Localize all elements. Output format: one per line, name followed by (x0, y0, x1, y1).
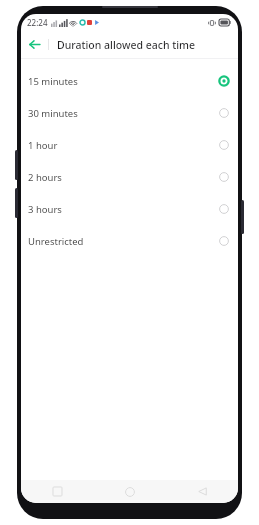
staticText: 15 minutes (28, 75, 78, 88)
staticText: 22:24 (27, 17, 48, 28)
button[interactable]: 2 hours (21, 161, 238, 193)
button[interactable]: Back (166, 480, 238, 503)
button[interactable]: 15 minutes (21, 65, 238, 97)
staticText: 1 hour (28, 139, 58, 152)
button[interactable]: 30 minutes (21, 97, 238, 129)
staticText: 30 minutes (28, 107, 78, 120)
staticText: Unrestricted (28, 235, 84, 248)
button[interactable]: 3 hours (21, 193, 238, 225)
button[interactable]: Unrestricted (21, 225, 238, 257)
staticText: 2 hours (28, 171, 62, 184)
staticText: 3 hours (28, 203, 62, 216)
staticText: Duration allowed each time (57, 38, 196, 52)
button[interactable]: Back (21, 31, 48, 58)
button[interactable]: Recent apps (21, 480, 94, 503)
button[interactable]: 1 hour (21, 129, 238, 161)
